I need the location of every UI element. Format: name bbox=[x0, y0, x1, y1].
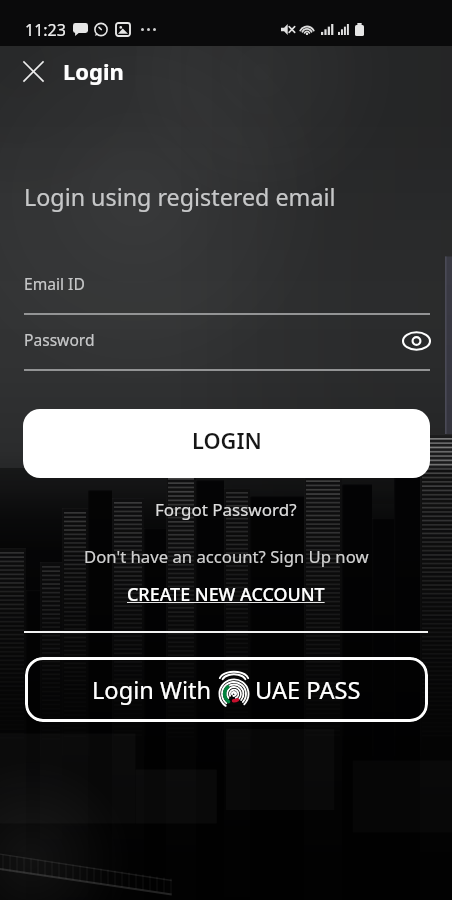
button[interactable]: Forgot Password? bbox=[149, 496, 303, 523]
button[interactable]: LOGIN bbox=[23, 409, 430, 478]
staticText: Login With bbox=[92, 674, 212, 706]
staticText: Login using registered email bbox=[24, 181, 336, 213]
button[interactable]: Don't have an account? Sign Up now bbox=[78, 543, 375, 570]
button[interactable]: Password bbox=[24, 322, 394, 369]
staticText: Forgot Password? bbox=[155, 498, 297, 521]
button[interactable]: Close bbox=[16, 54, 50, 88]
button[interactable]: Show password bbox=[403, 330, 430, 352]
staticText: Login bbox=[63, 56, 124, 86]
staticText: Don't have an account? Sign Up now bbox=[84, 545, 369, 568]
staticText: 11:23 bbox=[25, 19, 66, 41]
staticText: CREATE NEW ACCOUNT bbox=[127, 582, 325, 606]
button[interactable]: CREATE NEW ACCOUNT bbox=[121, 580, 331, 608]
button[interactable]: Email ID bbox=[24, 266, 430, 313]
staticText: Password bbox=[24, 329, 95, 350]
staticText: UAE PASS bbox=[255, 674, 361, 706]
button[interactable]: Login With bbox=[25, 657, 428, 722]
staticText: LOGIN bbox=[192, 426, 262, 456]
staticText: Email ID bbox=[24, 273, 85, 294]
